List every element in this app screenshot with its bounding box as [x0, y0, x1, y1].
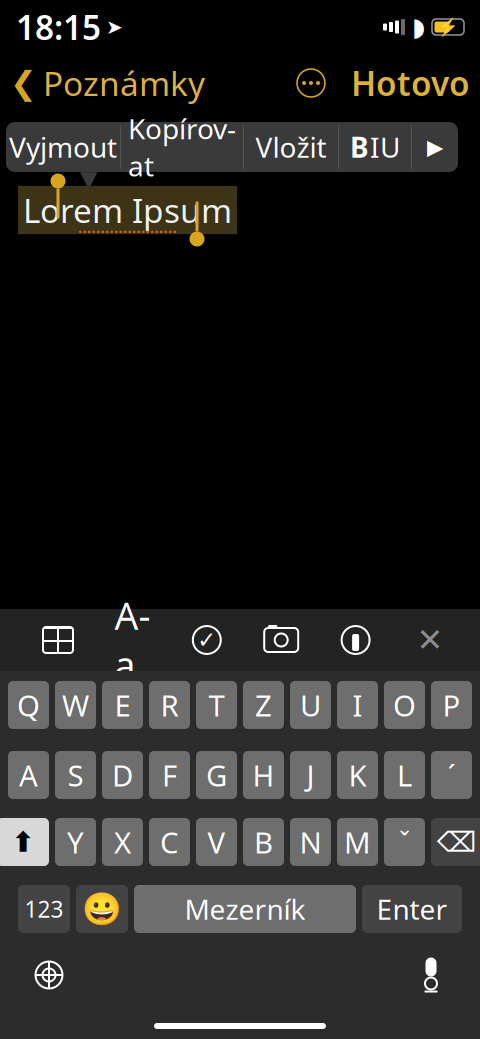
button[interactable]: J	[290, 751, 331, 799]
staticText: Hotovo	[351, 61, 470, 105]
staticText: L	[397, 755, 412, 794]
staticText: U	[300, 685, 321, 724]
staticText: P	[442, 685, 460, 724]
button[interactable]: 123	[18, 885, 70, 933]
staticText: D	[112, 755, 133, 794]
button[interactable]: O	[384, 681, 425, 729]
button[interactable]: S	[55, 751, 96, 799]
button[interactable]: X	[102, 818, 143, 866]
staticText: Poznámky	[43, 61, 205, 105]
staticText: ´	[447, 755, 455, 794]
staticText: ▶	[427, 135, 443, 159]
staticText: H	[252, 755, 274, 794]
staticText: M	[344, 822, 371, 861]
button[interactable]: K	[337, 751, 378, 799]
button[interactable]: Vložit	[244, 122, 338, 172]
button[interactable]: Camera	[259, 620, 303, 660]
staticText: O	[393, 685, 416, 724]
button[interactable]: T	[196, 681, 237, 729]
staticText: V	[207, 822, 225, 861]
button[interactable]: Z	[243, 681, 284, 729]
staticText: ◗	[412, 13, 425, 41]
button[interactable]: Hotovo	[351, 53, 470, 113]
button[interactable]: More	[297, 69, 325, 97]
button[interactable]: A	[8, 751, 49, 799]
staticText: 18:15	[16, 5, 101, 49]
staticText: Z	[255, 685, 272, 724]
staticText: ⌫	[437, 826, 477, 858]
staticText: R	[160, 685, 178, 724]
button[interactable]: Format	[110, 620, 154, 660]
button[interactable]: Q	[8, 681, 49, 729]
staticText: T	[208, 685, 224, 724]
button[interactable]: Dictate	[408, 952, 454, 998]
staticText: U	[380, 128, 400, 166]
button[interactable]: H	[243, 751, 284, 799]
staticText: ⬆	[11, 826, 34, 858]
staticText: ❮	[10, 65, 37, 101]
button[interactable]: Delete	[431, 818, 480, 866]
button[interactable]: U	[290, 681, 331, 729]
staticText: ▼	[80, 166, 97, 192]
staticText: Aa	[114, 590, 150, 690]
button[interactable]: R	[149, 681, 190, 729]
button[interactable]: Enter	[362, 885, 462, 933]
button[interactable]: Emoji	[76, 885, 128, 933]
button[interactable]: ˇ	[384, 818, 425, 866]
button[interactable]: F	[149, 751, 190, 799]
button[interactable]: P	[431, 681, 472, 729]
button[interactable]: Markup	[334, 620, 378, 660]
button[interactable]: Table	[36, 620, 80, 660]
button[interactable]: Change keyboard	[26, 952, 72, 998]
staticText: N	[299, 822, 321, 861]
staticText: W	[62, 685, 89, 724]
staticText: G	[206, 755, 227, 794]
button[interactable]: V	[196, 818, 237, 866]
button[interactable]: More options	[412, 122, 458, 172]
staticText: X	[114, 822, 131, 861]
staticText: Mezerník	[184, 890, 305, 928]
staticText: ✓	[197, 627, 216, 653]
staticText: Y	[67, 822, 84, 861]
staticText: S	[67, 755, 83, 794]
button[interactable]: Y	[55, 818, 96, 866]
staticText: Q	[17, 685, 40, 724]
button[interactable]: W	[55, 681, 96, 729]
button[interactable]: M	[337, 818, 378, 866]
button[interactable]: ❮	[10, 53, 205, 113]
staticText: ˇ	[399, 824, 410, 860]
staticText: C	[160, 822, 179, 861]
staticText: I	[370, 128, 379, 166]
staticText: Vložit	[255, 128, 326, 166]
button[interactable]: E	[102, 681, 143, 729]
staticText: 😀	[82, 891, 122, 927]
button[interactable]: I	[337, 681, 378, 729]
staticText: F	[162, 755, 177, 794]
staticText: B	[254, 822, 273, 861]
button[interactable]: ´	[431, 751, 472, 799]
button[interactable]: Close keyboard	[408, 620, 452, 660]
button[interactable]: D	[102, 751, 143, 799]
staticText: I	[352, 685, 362, 724]
button[interactable]: Checklist	[185, 620, 229, 660]
button[interactable]: C	[149, 818, 190, 866]
staticText: Lorem Ipsum	[23, 188, 232, 232]
staticText: A	[19, 755, 38, 794]
button[interactable]: Mezerník	[134, 885, 356, 933]
staticText: ➤	[106, 16, 123, 38]
button[interactable]: Shift	[0, 818, 49, 866]
staticText: K	[348, 755, 366, 794]
button[interactable]: Vyjmout	[6, 122, 120, 172]
staticText: J	[306, 755, 314, 794]
staticText: ✕	[416, 622, 443, 658]
staticText: Vyjmout	[9, 128, 117, 166]
button[interactable]: L	[384, 751, 425, 799]
staticText: Kopírovat	[128, 110, 236, 184]
button[interactable]: B	[339, 122, 411, 172]
staticText: ⚡	[437, 17, 459, 37]
button[interactable]: B	[243, 818, 284, 866]
button[interactable]: N	[290, 818, 331, 866]
button[interactable]: Kopírovat	[121, 122, 243, 172]
button[interactable]: G	[196, 751, 237, 799]
staticText: Enter	[376, 890, 447, 928]
